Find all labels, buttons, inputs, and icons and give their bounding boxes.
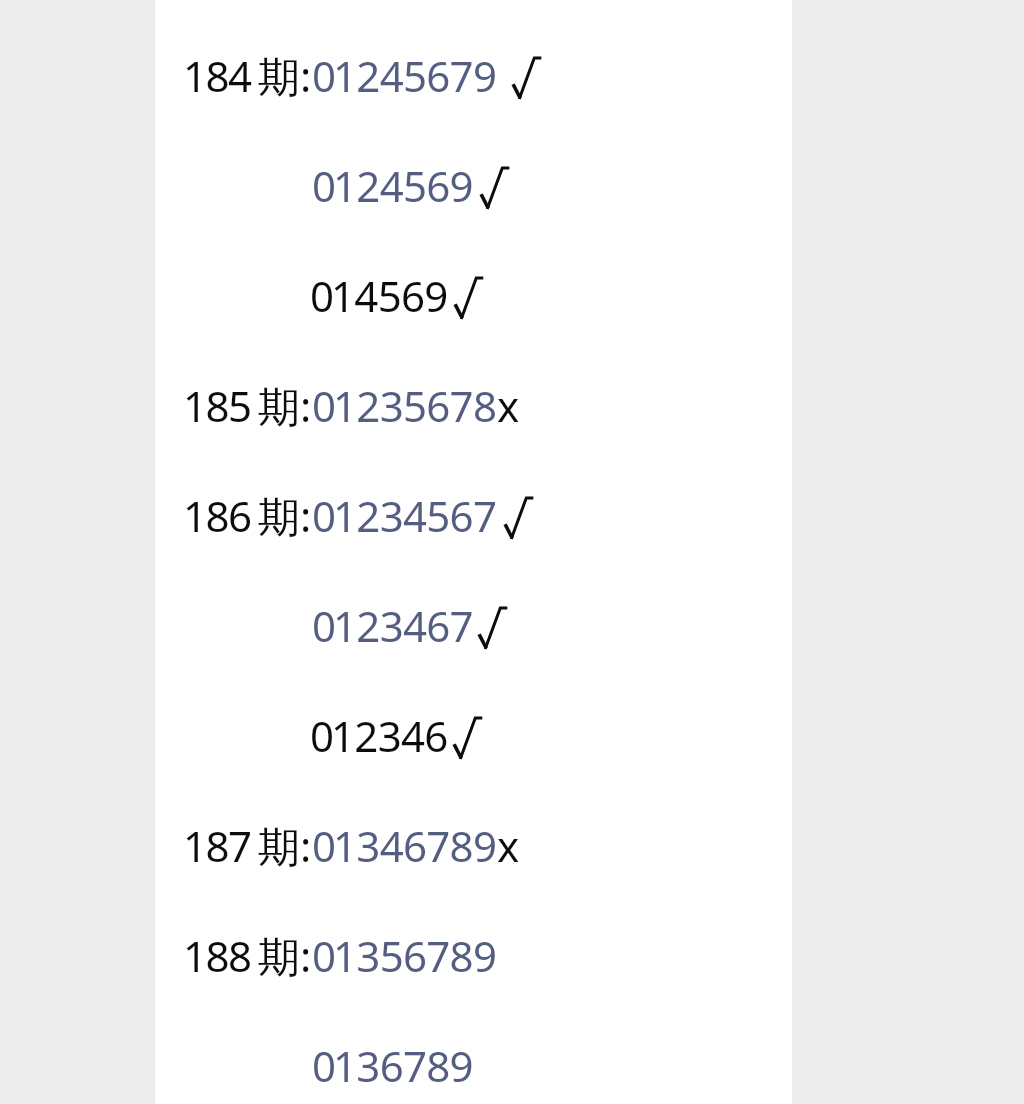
staticText: 1346789 bbox=[333, 817, 497, 874]
staticText: 0 bbox=[312, 927, 336, 984]
staticText: 188 bbox=[183, 927, 251, 984]
staticText: 186 bbox=[183, 487, 251, 544]
staticText: 期: bbox=[258, 487, 312, 544]
staticText: 12346 bbox=[331, 707, 448, 764]
staticText: 14569 bbox=[331, 267, 448, 324]
staticText: 123467 bbox=[333, 597, 473, 654]
button[interactable]: 188 bbox=[155, 911, 792, 1021]
staticText: 1234567 bbox=[333, 487, 497, 544]
button[interactable]: 185 bbox=[155, 361, 792, 471]
staticText: 0 bbox=[312, 377, 336, 434]
staticText: 185 bbox=[183, 377, 251, 434]
staticText: 0 bbox=[312, 597, 336, 654]
staticText: 期: bbox=[258, 817, 312, 874]
staticText: 0 bbox=[312, 487, 336, 544]
staticText: 1356789 bbox=[333, 927, 497, 984]
button[interactable]: 184 bbox=[155, 31, 792, 141]
button[interactable]: 186 bbox=[155, 471, 792, 581]
button[interactable]: 0 bbox=[155, 141, 792, 251]
other: Hit bbox=[503, 496, 534, 540]
staticText: 124569 bbox=[333, 157, 473, 214]
other: Hit bbox=[511, 56, 542, 100]
other: Hit bbox=[453, 276, 484, 320]
staticText: 1245679 bbox=[333, 47, 497, 104]
staticText: 0 bbox=[312, 47, 336, 104]
button[interactable]: 0 bbox=[155, 1021, 792, 1104]
staticText: 184 bbox=[183, 47, 251, 104]
staticText: 136789 bbox=[333, 1037, 473, 1094]
button[interactable]: 0 bbox=[155, 251, 792, 361]
staticText: 0 bbox=[310, 267, 334, 324]
button[interactable]: 0 bbox=[155, 581, 792, 691]
staticText: 期: bbox=[258, 47, 312, 104]
button[interactable]: 187 bbox=[155, 801, 792, 911]
staticText: 0 bbox=[312, 817, 336, 874]
staticText: x bbox=[497, 377, 520, 434]
staticText: 0 bbox=[310, 707, 334, 764]
staticText: x bbox=[497, 817, 520, 874]
other: Hit bbox=[477, 606, 508, 650]
button[interactable]: 0 bbox=[155, 691, 792, 801]
staticText: 0 bbox=[312, 157, 336, 214]
other: Hit bbox=[452, 716, 483, 760]
staticText: 187 bbox=[183, 817, 251, 874]
staticText: 0 bbox=[312, 1037, 336, 1094]
other: Hit bbox=[479, 166, 510, 210]
staticText: 期: bbox=[258, 927, 312, 984]
staticText: 1235678 bbox=[333, 377, 497, 434]
staticText: 期: bbox=[258, 377, 312, 434]
